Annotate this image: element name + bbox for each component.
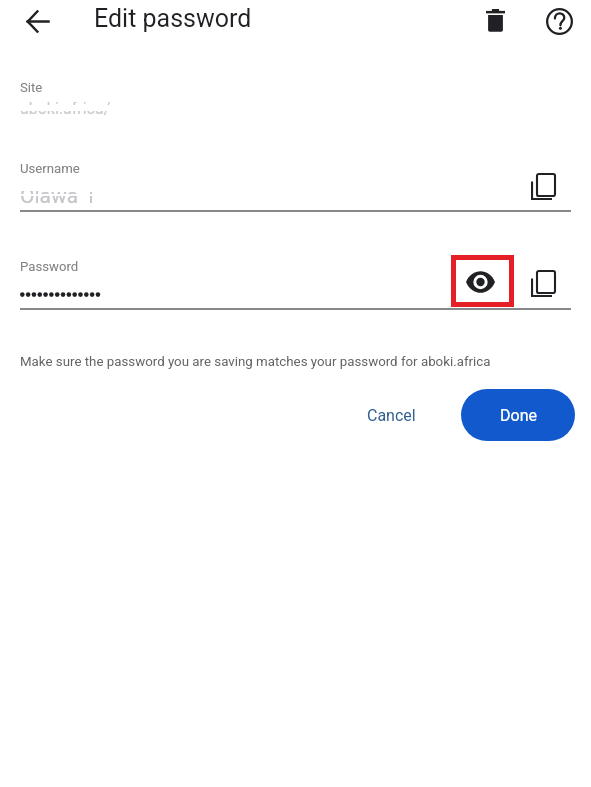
staticText: Edit password (94, 4, 252, 33)
button[interactable]: Copy password (521, 262, 565, 306)
staticText: Done (500, 406, 537, 425)
staticText: Cancel (367, 406, 416, 425)
staticText: Site (20, 80, 43, 95)
button[interactable]: Navigate up (20, 4, 55, 39)
button[interactable]: Show password (451, 255, 514, 307)
staticText: Password (20, 259, 79, 274)
button[interactable]: Help (537, 0, 581, 42)
staticText: Username (20, 161, 80, 176)
staticText: Olawa i (20, 184, 94, 208)
button[interactable]: Done (461, 389, 575, 441)
staticText: Make sure the password you are saving ma… (20, 354, 491, 370)
button[interactable]: Copy username (521, 165, 565, 209)
button[interactable]: Cancel (343, 392, 439, 439)
button[interactable]: Delete (473, 0, 517, 42)
staticText: aboki.africa/ (20, 99, 111, 118)
